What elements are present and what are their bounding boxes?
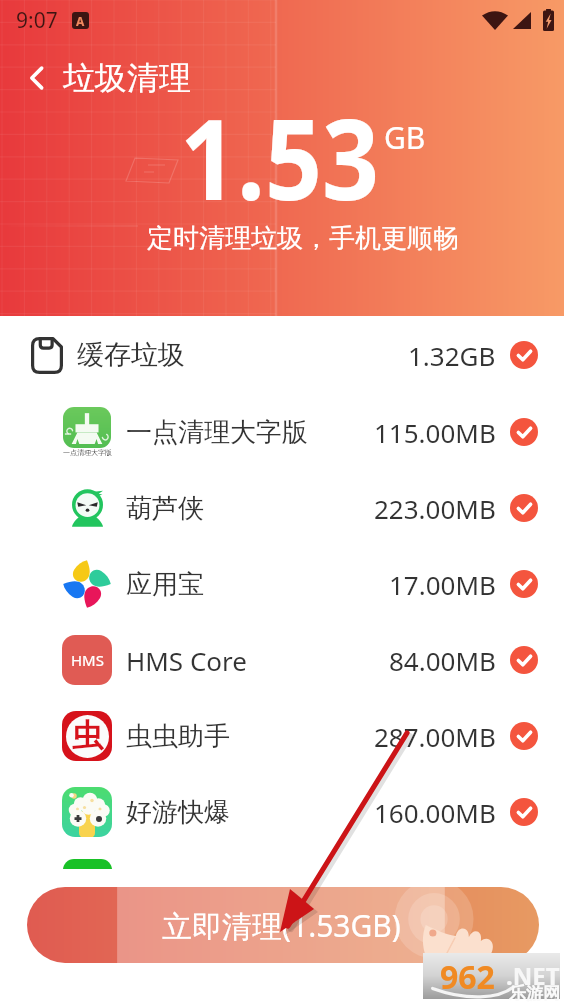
staticText: 葫芦侠 xyxy=(126,492,204,525)
staticText: 好游快爆 xyxy=(126,796,230,829)
staticText: 缓存垃圾 xyxy=(77,338,185,372)
staticText: 定时清理垃圾，手机更顺畅 xyxy=(147,222,459,255)
staticText: 160.00MB xyxy=(374,795,496,830)
staticText: 垃圾清理 xyxy=(63,58,191,98)
staticText: 1.53 xyxy=(180,80,379,233)
staticText: 84.00MB xyxy=(389,643,496,678)
button[interactable]: 好游快爆 xyxy=(0,774,564,850)
staticText: HMS xyxy=(71,650,104,670)
button[interactable]: Back xyxy=(18,59,56,97)
staticText: 1.32GB xyxy=(408,338,496,373)
staticText: .NET xyxy=(506,959,560,992)
staticText: 应用宝 xyxy=(126,568,204,601)
button[interactable]: 立即清理(1.53GB) xyxy=(27,887,539,963)
staticText: HMS Core xyxy=(126,643,247,678)
button[interactable]: 缓存垃圾 xyxy=(0,316,564,394)
staticText: 115.00MB xyxy=(374,415,496,450)
staticText: 立即清理(1.53GB) xyxy=(162,905,401,946)
staticText: GB xyxy=(384,117,426,158)
staticText: 虫虫助手 xyxy=(126,720,230,753)
button[interactable]: HMS xyxy=(0,622,564,698)
staticText: 17.00MB xyxy=(389,567,496,602)
button[interactable]: 应用宝 xyxy=(0,546,564,622)
button[interactable]: 虫 xyxy=(0,698,564,774)
staticText: 虫 xyxy=(72,716,103,755)
staticText: 乐游网 xyxy=(509,983,560,1004)
staticText: 962 xyxy=(440,955,495,999)
staticText: A xyxy=(76,13,85,29)
staticText: 9:07 xyxy=(16,6,58,35)
staticText: 一点清理大字版 xyxy=(63,448,112,457)
button[interactable]: 葫芦侠 xyxy=(0,470,564,546)
staticText: 287.00MB xyxy=(374,719,496,754)
button[interactable]: 一点清理大字版 xyxy=(0,394,564,470)
staticText: 一点清理大字版 xyxy=(126,416,308,449)
staticText: 223.00MB xyxy=(374,491,496,526)
